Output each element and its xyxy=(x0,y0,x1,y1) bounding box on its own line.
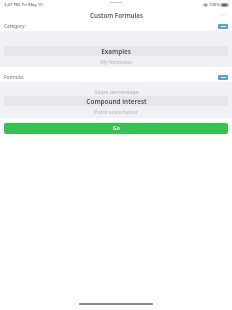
button[interactable]: Go xyxy=(4,123,228,134)
button[interactable]: Category settings xyxy=(218,24,228,29)
button[interactable]: More options xyxy=(219,11,228,18)
staticText: Slope percentage xyxy=(94,88,139,95)
staticText: Point scale factor xyxy=(94,108,138,115)
staticText: Compound interest xyxy=(86,97,147,106)
staticText: 3:47 PM Fri May 10 xyxy=(4,2,43,8)
button[interactable]: Formula settings xyxy=(218,75,228,80)
staticText: Go xyxy=(113,125,120,132)
staticText: Examples xyxy=(101,47,131,56)
staticText: 100% xyxy=(209,2,220,8)
staticText: Formula: xyxy=(4,74,25,81)
staticText: My formulas xyxy=(100,58,132,65)
button[interactable]: Slope percentage xyxy=(0,82,232,118)
button[interactable]: Examples xyxy=(0,31,232,67)
staticText: Custom Formulas xyxy=(90,11,143,19)
staticText: Category: xyxy=(4,23,26,30)
